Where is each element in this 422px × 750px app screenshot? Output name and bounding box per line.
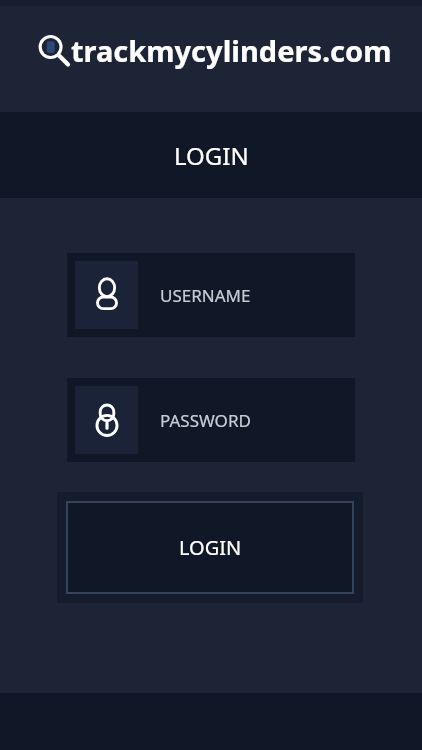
staticText: trackmycylinders.com	[71, 31, 392, 70]
staticText: USERNAME	[160, 284, 251, 307]
staticText: LOGIN	[179, 534, 242, 561]
other: Password	[90, 403, 124, 437]
other: trackmycylinders logo	[38, 35, 68, 65]
button[interactable]: LOGIN	[57, 492, 363, 603]
other: Username	[90, 278, 124, 312]
button[interactable]: Username	[67, 253, 355, 337]
staticText: LOGIN	[174, 139, 249, 172]
staticText: PASSWORD	[160, 409, 251, 432]
button[interactable]: Password	[67, 378, 355, 462]
